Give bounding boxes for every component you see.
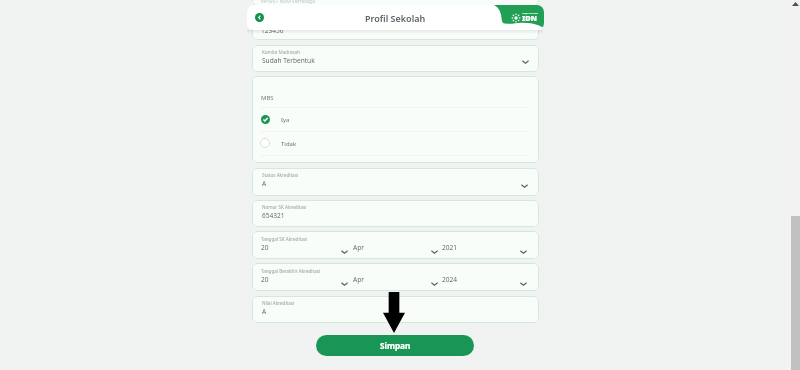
staticText: 20 — [261, 243, 269, 252]
staticText: Sudah Terbentuk — [262, 56, 315, 65]
staticText: MBS — [261, 94, 274, 102]
button[interactable]: Iya — [252, 108, 539, 132]
staticText: Simpan — [380, 340, 411, 351]
button[interactable]: Nilai Akreditasi — [252, 296, 539, 323]
staticText: IDN — [522, 13, 537, 23]
button[interactable]: Status Akreditasi — [252, 168, 539, 196]
staticText: Apr — [353, 243, 364, 252]
staticText: 123456 — [261, 26, 284, 35]
staticText: Tanggal SK Akreditasi — [261, 236, 308, 242]
staticText: 654321 — [262, 211, 285, 220]
button[interactable]: 20 — [252, 241, 343, 259]
staticText: Tidak — [281, 140, 297, 148]
staticText: NPSN / NSM Lembaga — [261, 0, 316, 4]
staticText: Status Akreditasi — [262, 172, 299, 178]
staticText: Nomor SK Akreditasi — [262, 204, 307, 210]
staticText: 2024 — [442, 275, 458, 284]
button[interactable]: Nomor SK Akreditasi — [252, 200, 539, 227]
button[interactable]: 2021 — [433, 241, 539, 259]
button[interactable]: Apr — [343, 273, 433, 291]
button[interactable]: 20 — [252, 273, 343, 291]
staticText: 2021 — [442, 243, 458, 252]
staticText: Tanggal Berakhir Akreditasi — [261, 268, 321, 274]
staticText: Komite Madrasah — [262, 49, 301, 55]
staticText: Apr — [353, 275, 364, 284]
button[interactable]: Simpan — [316, 335, 474, 356]
staticText: 20 — [261, 275, 269, 284]
button[interactable]: Komite Madrasah — [252, 45, 539, 72]
staticText: A — [262, 307, 267, 316]
staticText: Profil Sekolah — [365, 12, 426, 24]
staticText: Iya — [281, 116, 290, 124]
button[interactable]: Apr — [343, 241, 433, 259]
staticText: A — [262, 179, 267, 188]
button[interactable]: Back — [255, 13, 264, 22]
button[interactable]: Tidak — [252, 132, 539, 156]
staticText: DITJEN PENDIS — [522, 12, 539, 15]
button[interactable]: 2024 — [433, 273, 539, 291]
staticText: Nilai Akreditasi — [262, 300, 295, 306]
